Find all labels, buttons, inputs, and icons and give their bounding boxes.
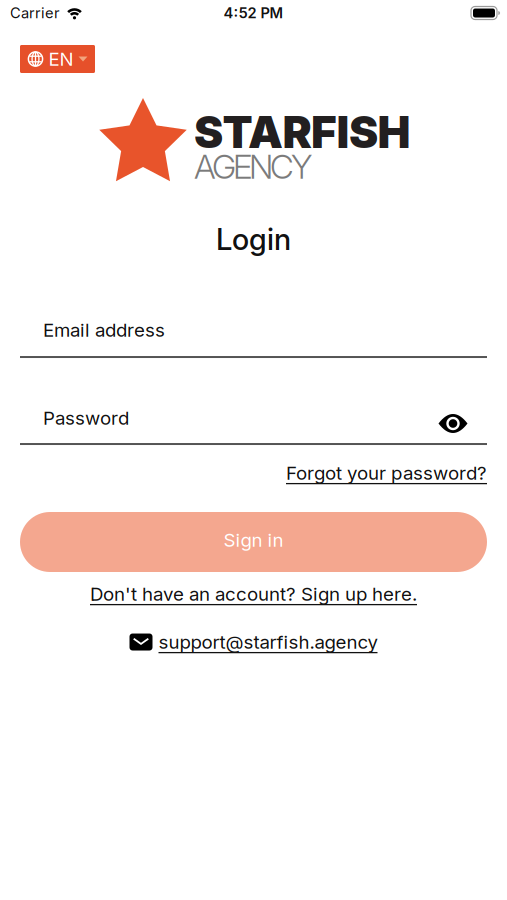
staticText: Password [43, 407, 129, 429]
button[interactable]: Email address [0, 319, 507, 358]
staticText: Carrier [10, 4, 60, 22]
staticText: Email address [43, 319, 165, 341]
staticText: Forgot your password? [286, 462, 487, 484]
staticText: Sign in [223, 529, 283, 551]
staticText: EN [48, 48, 73, 70]
button[interactable]: Don't have an account? Sign up here. [0, 583, 507, 605]
staticText: Don't have an account? Sign up here. [90, 583, 417, 605]
button[interactable]: Change language [20, 45, 95, 73]
staticText: STARFISH [194, 106, 410, 158]
staticText: 4:52 PM [223, 4, 283, 22]
button[interactable]: Password [0, 407, 507, 445]
button[interactable]: Forgot your password? [0, 462, 507, 484]
button[interactable]: Sign in [20, 512, 487, 572]
staticText: Login [216, 222, 291, 257]
button[interactable]: support@starfish.agency [0, 631, 507, 653]
staticText: AGENCY [194, 147, 312, 186]
staticText: support@starfish.agency [158, 631, 377, 653]
button[interactable]: Show password [438, 413, 468, 434]
